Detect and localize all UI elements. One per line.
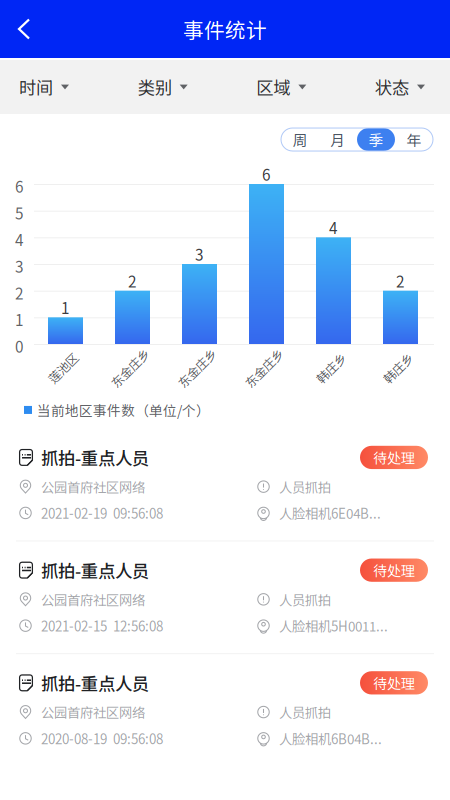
staticText: 事件统计 [183,14,267,44]
staticText: 人员抓拍 [279,590,331,609]
staticText: 公园首府社区网络 [41,590,145,609]
button[interactable]: 区域 [256,60,306,114]
staticText: 东金庄乡 [173,359,221,377]
button[interactable]: 周 [281,128,319,151]
button[interactable]: 类别 [138,60,188,114]
staticText: 莲池区 [45,359,81,377]
staticText: 类别 [138,74,172,100]
staticText: 5 [15,202,24,224]
staticText: 月 [330,129,345,150]
staticText: 2021-02-15 12:56:08 [41,616,163,635]
button[interactable]: 年 [395,128,433,151]
staticText: 抓拍-重点人员 [41,445,149,470]
button[interactable]: 抓拍-重点人员 [0,429,450,541]
staticText: 2021-02-19 09:56:08 [41,503,163,523]
staticText: 0 [15,335,24,357]
staticText: 区域 [256,74,290,100]
staticText: 人脸相机6B04B... [279,729,382,748]
staticText: 时间 [19,74,53,100]
button[interactable]: 返回 [0,1,43,56]
staticText: 韩庄乡 [313,359,349,377]
staticText: 6 [15,175,24,197]
button[interactable]: 季 [357,128,395,151]
button[interactable]: 状态 [375,60,425,114]
staticText: 周 [292,129,307,150]
staticText: 待处理 [373,673,415,693]
staticText: 6 [262,163,271,185]
staticText: 4 [329,216,338,238]
staticText: 4 [15,228,24,250]
staticText: 状态 [375,74,409,100]
staticText: 2 [396,270,405,292]
staticText: 人员抓拍 [279,702,331,722]
staticText: 2020-08-19 09:56:08 [41,729,163,748]
staticText: 东金庄乡 [106,359,154,377]
staticText: 1 [61,296,70,318]
button[interactable]: 时间 [19,60,69,114]
button[interactable]: 抓拍-重点人员 [0,542,450,653]
staticText: 抓拍-重点人员 [41,558,149,583]
staticText: 年 [406,129,421,150]
staticText: 人脸相机5H0011... [279,616,388,635]
staticText: 待处理 [373,447,415,468]
staticText: 2 [128,270,137,292]
staticText: 1 [15,308,24,330]
staticText: 公园首府社区网络 [41,702,145,722]
button[interactable]: 月 [319,128,357,151]
staticText: 3 [15,255,24,277]
staticText: 韩庄乡 [380,359,416,377]
staticText: 东金庄乡 [240,359,288,377]
staticText: 人员抓拍 [279,477,331,496]
staticText: 当前地区事件数（单位/个） [37,400,210,420]
staticText: 2 [15,282,24,304]
button[interactable]: 抓拍-重点人员 [0,654,450,766]
staticText: 公园首府社区网络 [41,477,145,496]
staticText: 待处理 [373,560,415,580]
staticText: 3 [195,243,204,265]
staticText: 季 [368,129,383,150]
staticText: 抓拍-重点人员 [41,670,149,695]
staticText: 人脸相机6E04B... [279,503,381,523]
